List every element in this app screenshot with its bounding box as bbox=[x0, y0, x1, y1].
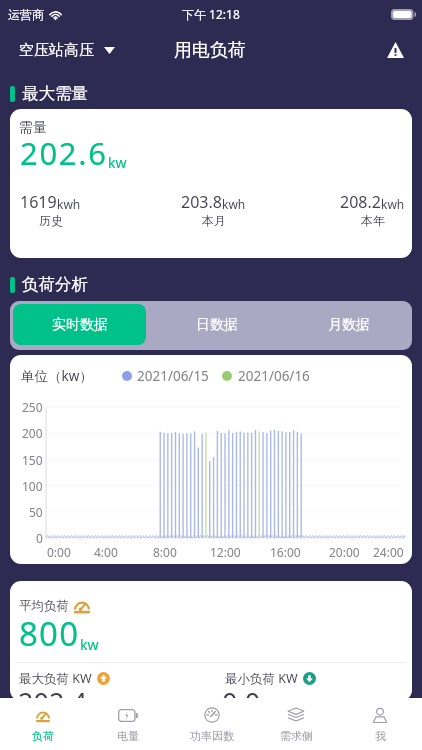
staticText: 单位（kw） bbox=[21, 367, 93, 385]
staticText: 250 bbox=[22, 399, 43, 415]
staticText: 202.6 bbox=[20, 132, 108, 174]
button[interactable]: 需量 bbox=[10, 109, 412, 258]
staticText: 20:00 bbox=[329, 544, 360, 560]
button[interactable]: 电量 bbox=[85, 698, 170, 750]
staticText: 0:00 bbox=[47, 544, 71, 560]
staticText: 203.8 bbox=[181, 191, 222, 213]
staticText: 208.2 bbox=[340, 191, 381, 213]
staticText: 100 bbox=[22, 478, 43, 494]
button[interactable]: 空压站高压 bbox=[18, 35, 116, 66]
staticText: 最大负荷 KW bbox=[19, 670, 92, 687]
button[interactable]: 需求侧 bbox=[254, 698, 338, 750]
button[interactable]: 月数据 bbox=[283, 304, 412, 345]
staticText: 我 bbox=[375, 729, 386, 743]
staticText: kw bbox=[80, 635, 99, 654]
button[interactable]: 功率因数 bbox=[170, 698, 254, 750]
staticText: 50 bbox=[29, 504, 43, 520]
button[interactable]: 负荷 bbox=[0, 698, 85, 750]
staticText: 200 bbox=[22, 425, 43, 441]
staticText: 功率因数 bbox=[190, 729, 234, 743]
staticText: 电量 bbox=[117, 729, 139, 743]
staticText: 用电负荷 bbox=[174, 39, 246, 62]
staticText: 运营商 bbox=[8, 7, 44, 22]
staticText: 需量 bbox=[19, 119, 47, 137]
button[interactable]: 我 bbox=[338, 698, 422, 750]
button[interactable]: 日数据 bbox=[150, 304, 283, 345]
staticText: kwh bbox=[222, 196, 246, 212]
staticText: 0 bbox=[36, 530, 43, 546]
staticText: 202.4 bbox=[18, 684, 88, 701]
button[interactable]: 实时数据 bbox=[13, 304, 146, 345]
staticText: 0.0 bbox=[222, 684, 261, 701]
staticText: 月数据 bbox=[328, 316, 370, 334]
staticText: 日数据 bbox=[196, 316, 238, 334]
button[interactable]: 告警 bbox=[382, 37, 408, 63]
staticText: 需求侧 bbox=[280, 729, 313, 743]
staticText: 12:00 bbox=[210, 544, 241, 560]
staticText: 最小负荷 KW bbox=[225, 670, 298, 687]
staticText: 16:00 bbox=[270, 544, 301, 560]
staticText: kwh bbox=[381, 196, 405, 212]
staticText: 800 bbox=[19, 611, 80, 656]
button[interactable]: 平均负荷 bbox=[10, 581, 412, 701]
staticText: 负荷 bbox=[32, 729, 54, 743]
staticText: 4:00 bbox=[94, 544, 118, 560]
staticText: 最大需量 bbox=[22, 83, 88, 104]
staticText: 本月 bbox=[202, 213, 226, 228]
staticText: 8:00 bbox=[153, 544, 177, 560]
staticText: 负荷分析 bbox=[22, 274, 88, 295]
staticText: kw bbox=[108, 153, 127, 172]
staticText: 1619 bbox=[20, 191, 57, 213]
staticText: kwh bbox=[57, 196, 81, 212]
staticText: 本年 bbox=[361, 213, 385, 228]
staticText: 空压站高压 bbox=[19, 41, 94, 60]
staticText: 24:00 bbox=[373, 544, 404, 560]
staticText: 下午 12:18 bbox=[182, 6, 240, 22]
staticText: 平均负荷 bbox=[19, 598, 69, 614]
staticText: 历史 bbox=[39, 213, 63, 228]
staticText: 2021/06/16 bbox=[238, 367, 310, 385]
staticText: 2021/06/15 bbox=[137, 367, 209, 385]
staticText: 150 bbox=[22, 452, 43, 468]
staticText: 实时数据 bbox=[52, 316, 108, 334]
